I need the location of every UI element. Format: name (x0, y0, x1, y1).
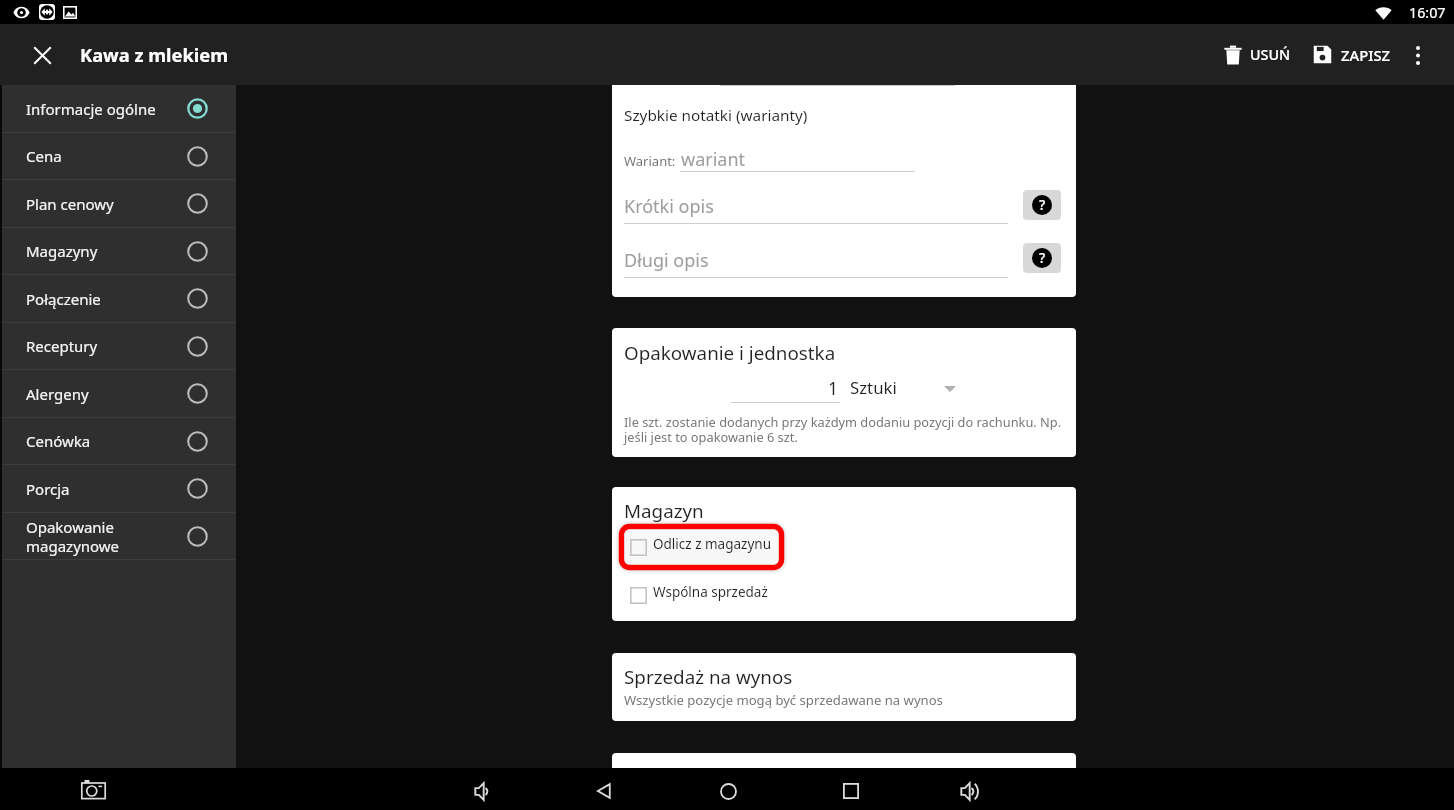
button[interactable]: Opakowanie magazynowe (0, 513, 236, 559)
staticText: ZAPISZ (1341, 45, 1391, 65)
staticText: Informacje ogólne (26, 99, 187, 119)
button[interactable]: Magazyny (0, 228, 236, 274)
staticText: Wariant: (624, 152, 676, 170)
button[interactable]: Połączenie (0, 275, 236, 322)
staticText: Długi opis (624, 248, 709, 273)
button[interactable]: Close (23, 36, 61, 74)
staticText: Wszystkie pozycje mogą być sprzedawane n… (624, 691, 943, 709)
staticText: USUŃ (1250, 45, 1291, 64)
button[interactable]: Cenówka (0, 418, 236, 464)
staticText: 16:07 (1409, 3, 1446, 22)
staticText: 1 (828, 376, 839, 400)
staticText: Odlicz z magazynu (653, 535, 771, 553)
staticText: Receptury (26, 336, 187, 356)
staticText: Wspólna sprzedaż (653, 583, 768, 601)
button[interactable]: Receptury (0, 323, 236, 369)
staticText: Sztuki (850, 376, 897, 399)
staticText: Szybkie notatki (warianty) (624, 105, 808, 126)
button[interactable]: Wspólna sprzedaż (630, 576, 768, 608)
button[interactable]: Odlicz z magazynu (630, 528, 771, 560)
button[interactable]: Informacje ogólne (0, 85, 236, 132)
staticText: Krótki opis (624, 194, 714, 219)
button[interactable]: Home (708, 771, 748, 810)
button[interactable]: Back (584, 771, 624, 810)
button[interactable]: Screenshot (74, 770, 112, 808)
staticText: Cena (26, 146, 187, 166)
button[interactable]: Plan cenowy (0, 180, 236, 227)
staticText: ? (1039, 195, 1046, 214)
button[interactable]: Volume down (465, 771, 505, 810)
button[interactable]: USUŃ (1214, 24, 1301, 85)
button[interactable]: Alergeny (0, 370, 236, 417)
staticText: Plan cenowy (26, 194, 187, 214)
staticText: ? (1039, 248, 1046, 267)
button[interactable]: ZAPISZ (1303, 24, 1401, 85)
staticText: Porcja (26, 479, 187, 499)
staticText: Opakowanie magazynowe (26, 517, 187, 556)
staticText: Magazyn (624, 498, 704, 524)
staticText: Kawa z mlekiem (80, 42, 229, 67)
button[interactable]: Help (1023, 190, 1061, 220)
staticText: Połączenie (26, 289, 187, 309)
button[interactable]: More options (1401, 36, 1434, 74)
button[interactable]: Recents (831, 771, 871, 810)
button[interactable]: Volume up (951, 771, 991, 810)
staticText: Alergeny (26, 384, 187, 404)
button[interactable]: Cena (0, 133, 236, 179)
staticText: Ile szt. zostanie dodanych przy każdym d… (624, 413, 1062, 446)
staticText: Opakowanie i jednostka (624, 340, 836, 366)
staticText: Sprzedaż na wynos (624, 664, 793, 690)
staticText: Cenówka (26, 431, 187, 451)
button[interactable]: Help (1023, 243, 1061, 273)
staticText: wariant (681, 147, 746, 172)
button[interactable]: Porcja (0, 465, 236, 512)
staticText: Magazyny (26, 241, 187, 261)
